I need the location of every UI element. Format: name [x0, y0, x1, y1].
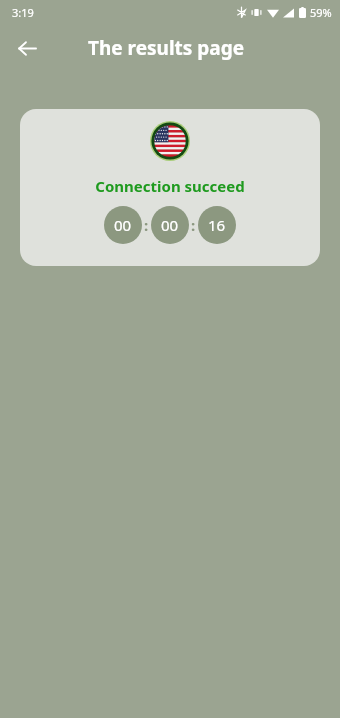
staticText: 00 — [161, 215, 179, 235]
staticText: 3:19 — [12, 5, 34, 20]
staticText: 59% — [310, 5, 332, 20]
staticText: The results page — [88, 35, 245, 61]
staticText: Connection succeed — [95, 176, 245, 196]
staticText: 00 — [114, 215, 132, 235]
button[interactable]: Connection succeed — [20, 109, 320, 266]
staticText: : — [191, 215, 196, 235]
staticText: 16 — [208, 215, 226, 235]
button[interactable]: Back — [9, 30, 45, 66]
staticText: : — [144, 215, 149, 235]
